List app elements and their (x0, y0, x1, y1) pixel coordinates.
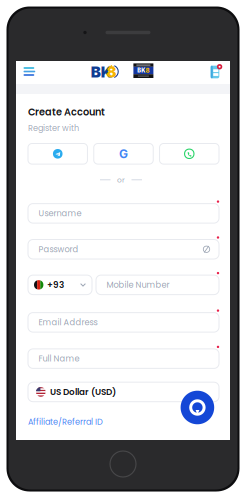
button[interactable]: Promotion banner (133, 63, 153, 78)
button[interactable]: Username (28, 204, 219, 223)
button[interactable]: Currency: US Dollar (USD) (28, 382, 219, 402)
staticText: BK (91, 63, 113, 81)
button[interactable]: Email Address (28, 313, 219, 332)
staticText: Affiliate/Referral ID (28, 416, 103, 428)
button[interactable]: Menu (20, 64, 38, 79)
button[interactable]: Password (28, 239, 219, 259)
button[interactable]: Affiliate/Referral ID (28, 416, 219, 428)
button[interactable]: Full Name (28, 349, 219, 368)
button[interactable]: Notifications (207, 63, 223, 80)
staticText: +93 (47, 279, 64, 291)
staticText: Username (38, 208, 81, 219)
staticText: or (117, 175, 125, 185)
button[interactable]: BK8 home (93, 62, 123, 79)
staticText: BK (137, 67, 145, 74)
staticText: 8 (106, 63, 116, 81)
staticText: 8 (146, 67, 150, 74)
staticText: Mobile Number (106, 279, 169, 291)
staticText: Full Name (38, 353, 79, 364)
staticText: G (119, 146, 128, 161)
staticText: Password (38, 243, 78, 255)
button[interactable]: Live chat (180, 390, 214, 424)
button[interactable]: Register with Google (94, 143, 153, 164)
button[interactable]: Mobile Number (96, 275, 219, 295)
staticText: Register with (28, 122, 79, 134)
button[interactable]: Country code +93 (28, 275, 92, 295)
staticText: Create Account (28, 105, 105, 119)
button[interactable]: Register with WhatsApp (159, 143, 219, 164)
button[interactable]: Register with Telegram (28, 143, 87, 164)
staticText: Email Address (38, 317, 97, 328)
staticText: US Dollar (USD) (50, 386, 116, 398)
